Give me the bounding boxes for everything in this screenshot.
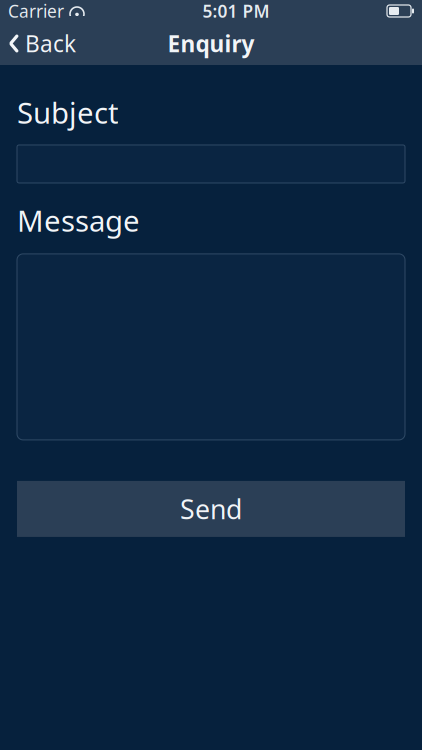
staticText: Subject (17, 93, 119, 132)
button[interactable]: Back (0, 22, 76, 64)
staticText: 5:01 PM (202, 0, 269, 22)
button[interactable]: Send (17, 481, 405, 537)
staticText: Carrier (8, 0, 64, 22)
staticText: Back (25, 28, 76, 58)
staticText: Send (180, 491, 242, 527)
staticText: Message (17, 201, 140, 240)
staticText: Enquiry (167, 28, 254, 58)
